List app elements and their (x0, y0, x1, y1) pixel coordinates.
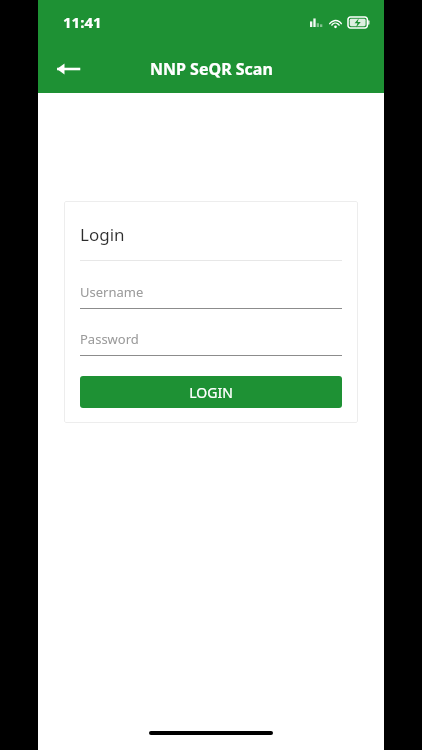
staticText: Username (80, 283, 144, 301)
button[interactable]: LOGIN (80, 376, 342, 408)
staticText: 11:41 (63, 12, 102, 32)
staticText: NNP SeQR Scan (150, 58, 273, 80)
staticText: Password (80, 330, 139, 348)
button[interactable]: Username (80, 283, 342, 309)
staticText: LOGIN (189, 383, 233, 402)
button[interactable]: Password (80, 330, 342, 356)
staticText: Login (80, 223, 125, 246)
button[interactable]: Back (46, 47, 90, 91)
